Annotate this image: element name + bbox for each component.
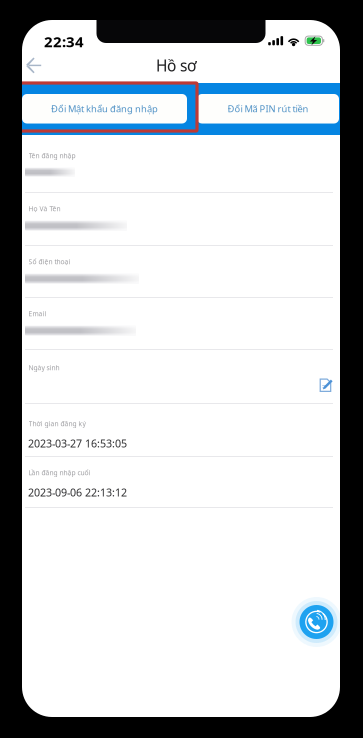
staticText: Đổi Mật khẩu đăng nhập	[51, 102, 158, 115]
staticText: Đổi Mã PIN rút tiền	[227, 102, 308, 115]
button[interactable]: Edit date of birth	[319, 377, 333, 393]
button[interactable]: Đổi Mật khẩu đăng nhập	[22, 94, 187, 123]
staticText: Thời gian đăng ký	[28, 419, 85, 428]
button[interactable]: Call support	[291, 597, 341, 647]
button[interactable]: Back	[23, 51, 44, 80]
staticText: 2023-09-06 22:13:12	[28, 485, 127, 500]
staticText: 2023-03-27 16:53:05	[28, 436, 127, 451]
staticText: 22:34	[44, 31, 84, 51]
staticText: Tên đăng nhập	[28, 151, 75, 160]
staticText: Hồ sơ	[156, 55, 197, 76]
staticText: Ngày sinh	[28, 363, 59, 372]
staticText: Số điện thoại	[28, 257, 70, 266]
button[interactable]: Đổi Mã PIN rút tiền	[197, 94, 339, 123]
staticText: Họ Và Tên	[28, 204, 60, 213]
staticText: Email	[28, 309, 46, 318]
staticText: Lần đăng nhập cuối	[28, 468, 90, 477]
